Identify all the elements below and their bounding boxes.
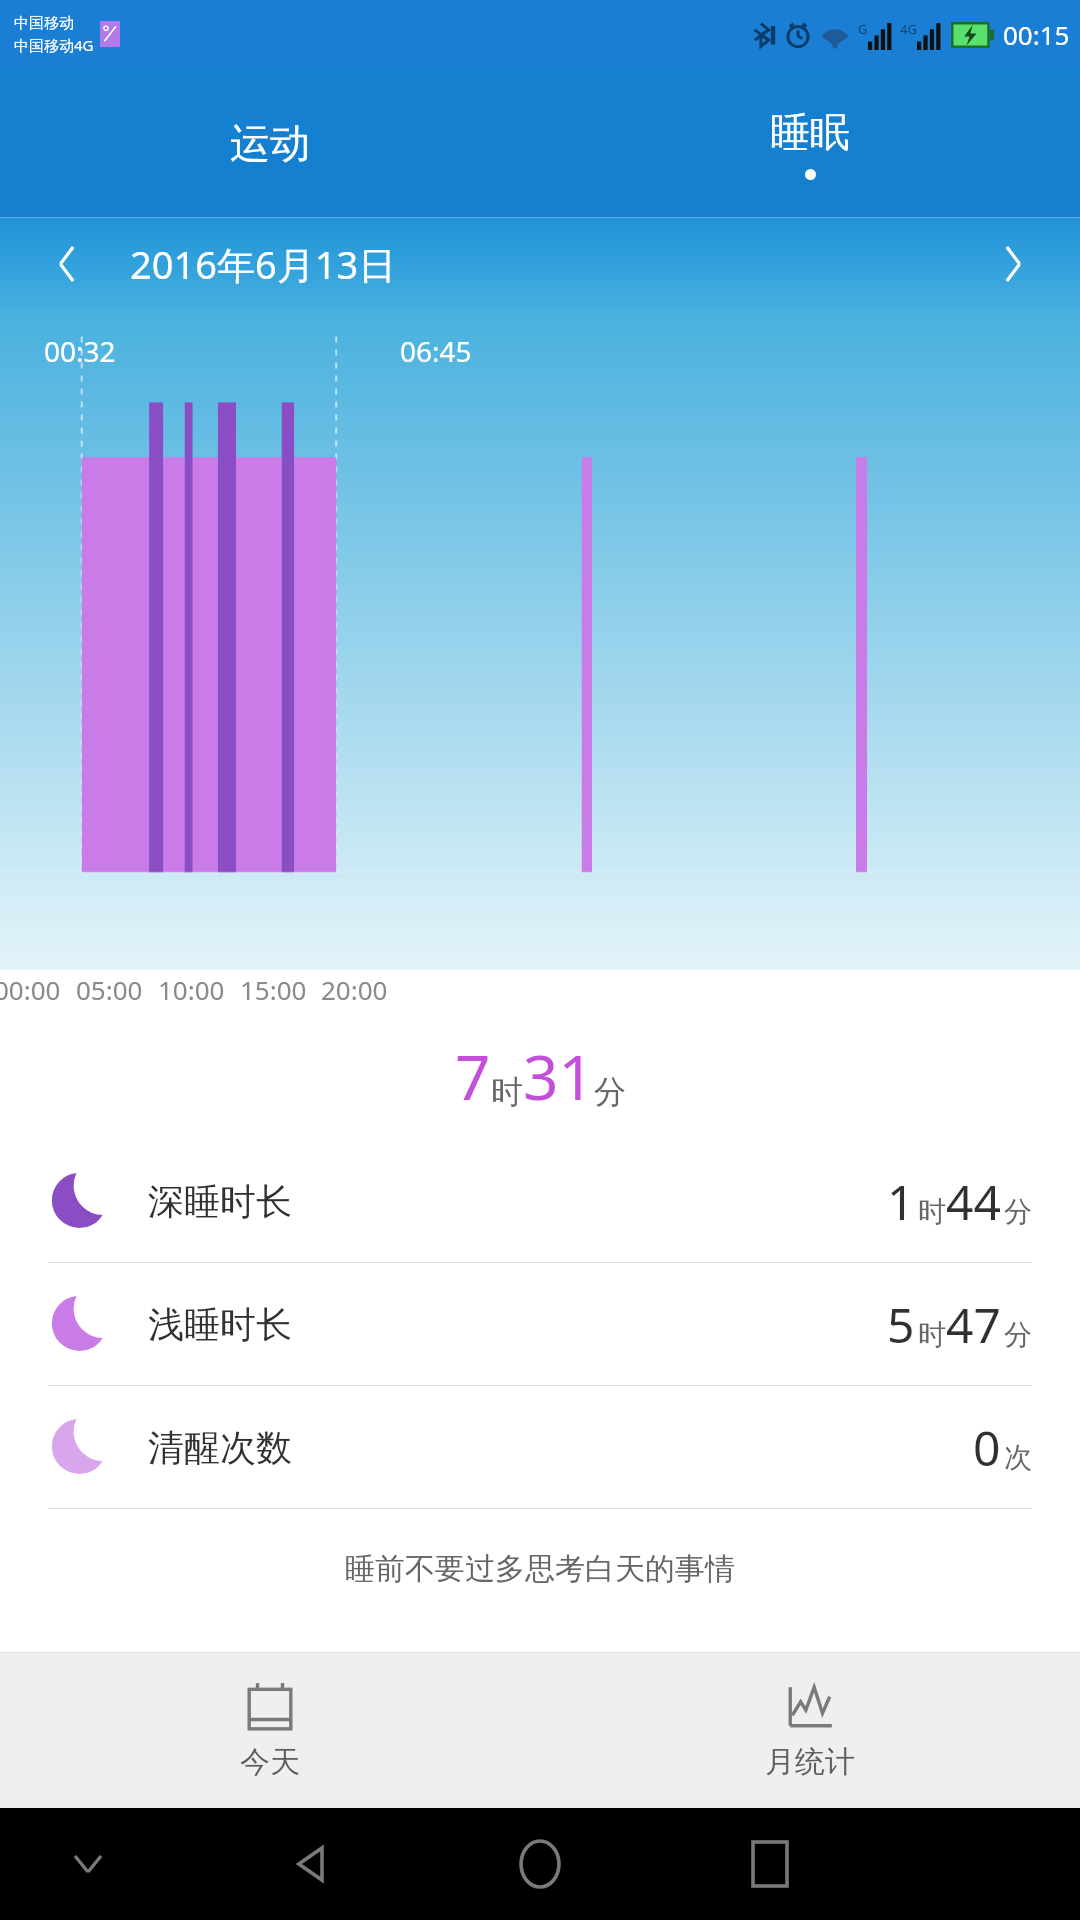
staticText: 时: [918, 1317, 946, 1352]
staticText: 06:45: [400, 332, 472, 370]
staticText: 1: [887, 1169, 915, 1234]
staticText: 次: [1004, 1440, 1032, 1475]
button[interactable]: Back: [274, 1828, 346, 1900]
staticText: 00:15: [1003, 17, 1070, 52]
button[interactable]: 浅睡时长: [0, 1263, 1080, 1385]
button[interactable]: Home: [504, 1828, 576, 1900]
staticText: 05:00: [76, 972, 143, 1007]
staticText: 7: [455, 1034, 491, 1118]
staticText: 4G: [900, 20, 917, 38]
button[interactable]: 今天: [0, 1653, 540, 1808]
staticText: 今天: [240, 1743, 300, 1781]
staticText: 31: [523, 1034, 594, 1118]
staticText: 0: [973, 1415, 1001, 1480]
staticText: 浅睡时长: [148, 1302, 292, 1347]
button[interactable]: Previous day: [44, 241, 90, 287]
staticText: 睡眠: [770, 107, 850, 157]
staticText: 20:00: [321, 972, 388, 1007]
staticText: 分: [1004, 1317, 1032, 1352]
button[interactable]: 清醒次数: [0, 1386, 1080, 1508]
staticText: 中国移动: [14, 14, 74, 33]
staticText: 清醒次数: [148, 1425, 292, 1470]
staticText: 5: [887, 1292, 915, 1357]
staticText: 00:32: [44, 332, 116, 370]
staticText: 分: [594, 1072, 626, 1112]
button[interactable]: 运动: [0, 68, 540, 218]
button[interactable]: Recents: [734, 1828, 806, 1900]
button[interactable]: Next day: [990, 241, 1036, 287]
button[interactable]: 月统计: [540, 1653, 1080, 1808]
staticText: 中国移动4G: [14, 35, 94, 55]
staticText: 月统计: [765, 1743, 855, 1781]
button[interactable]: 深睡时长: [0, 1140, 1080, 1262]
staticText: 10:00: [158, 972, 225, 1007]
staticText: 44: [946, 1169, 1001, 1234]
staticText: 时: [491, 1072, 523, 1112]
staticText: 00:00: [0, 972, 61, 1007]
staticText: G: [858, 20, 868, 38]
button[interactable]: Hide keyboard: [60, 1836, 116, 1892]
staticText: 运动: [230, 118, 310, 168]
staticText: 睡前不要过多思考白天的事情: [345, 1550, 735, 1588]
staticText: 深睡时长: [148, 1179, 292, 1224]
staticText: 时: [918, 1194, 946, 1229]
staticText: 分: [1004, 1194, 1032, 1229]
staticText: 47: [946, 1292, 1001, 1357]
staticText: 2016年6月13日: [130, 238, 397, 290]
staticText: 15:00: [240, 972, 307, 1007]
button[interactable]: 睡眠: [540, 68, 1080, 218]
